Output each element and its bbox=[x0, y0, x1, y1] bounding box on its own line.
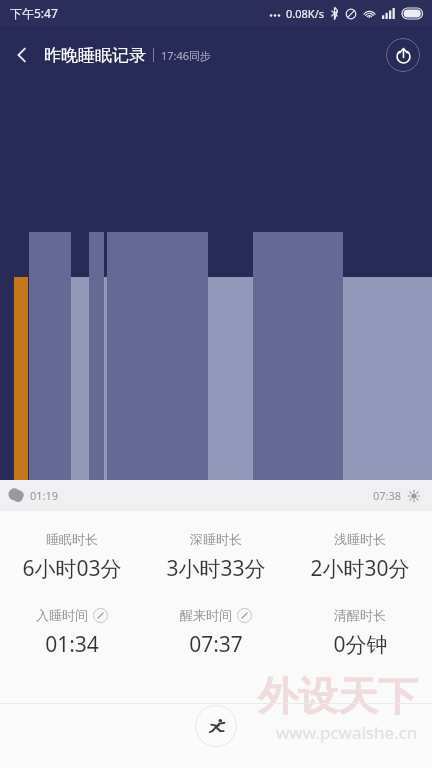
staticText: 睡眠时长 bbox=[46, 531, 98, 547]
staticText: 07:37 bbox=[189, 630, 243, 659]
staticText: www.pcwaishe.cn bbox=[276, 721, 418, 744]
staticText: 浅睡时长 bbox=[334, 531, 386, 547]
other: Edit 醒来时间 bbox=[237, 608, 252, 623]
staticText: 外设天下 bbox=[258, 671, 418, 721]
button[interactable]: Share bbox=[386, 38, 420, 72]
button[interactable]: Start activity bbox=[195, 705, 237, 747]
staticText: 01:19 bbox=[30, 488, 59, 503]
staticText: 0.08K/s bbox=[286, 6, 324, 21]
staticText: 下午5:47 bbox=[10, 5, 58, 21]
staticText: 2小时30分 bbox=[310, 554, 410, 583]
staticText: 深睡时长 bbox=[190, 531, 242, 547]
staticText: 清醒时长 bbox=[334, 607, 386, 623]
staticText: 入睡时间 bbox=[36, 607, 88, 623]
button[interactable]: 入睡时间 bbox=[0, 607, 144, 659]
staticText: 醒来时间 bbox=[180, 607, 232, 623]
button[interactable]: 醒来时间 bbox=[144, 607, 288, 659]
staticText: 3小时33分 bbox=[166, 554, 266, 583]
staticText: 07:38 bbox=[373, 488, 402, 503]
staticText: 6小时03分 bbox=[22, 554, 122, 583]
staticText: 昨晚睡眠记录 bbox=[44, 45, 146, 66]
staticText: 0分钟 bbox=[333, 630, 388, 659]
staticText: 01:34 bbox=[45, 630, 99, 659]
other: Edit 入睡时间 bbox=[93, 608, 108, 623]
button[interactable]: Back bbox=[0, 33, 44, 77]
staticText: 17:46同步 bbox=[161, 48, 212, 63]
